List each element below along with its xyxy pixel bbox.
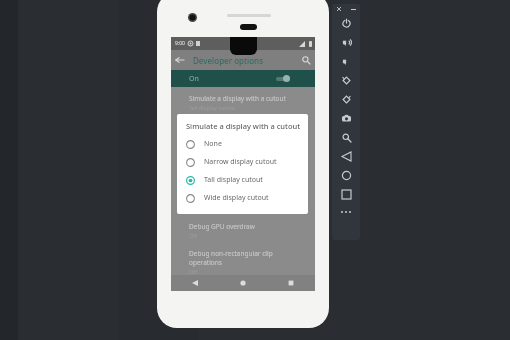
- button[interactable]: Power: [332, 14, 360, 33]
- button[interactable]: Screenshot: [332, 109, 360, 128]
- button[interactable]: Back: [171, 51, 189, 69]
- button[interactable]: Overview: [332, 185, 360, 204]
- staticText: Narrow display cutout: [204, 157, 277, 167]
- button[interactable]: Show non-rectangular clip oper...: [171, 203, 315, 214]
- button[interactable]: Volume down: [332, 52, 360, 71]
- button[interactable]: Home: [332, 166, 360, 185]
- button[interactable]: Minimize: [346, 4, 360, 14]
- staticText: Debug non-rectangular clip operations: [189, 249, 307, 267]
- button[interactable]: Back: [332, 147, 360, 166]
- staticText: Simulate a display with a cutout: [189, 94, 286, 103]
- button[interactable]: Home: [219, 275, 267, 291]
- button[interactable]: Simulate a display with a cutout: [171, 87, 315, 111]
- button[interactable]: Zoom: [332, 128, 360, 147]
- staticText: Developer options: [193, 55, 297, 66]
- button[interactable]: Search: [297, 51, 315, 69]
- button[interactable]: None: [186, 135, 302, 153]
- button[interactable]: Close: [332, 4, 346, 14]
- button[interactable]: On: [171, 70, 315, 87]
- staticText: None: [204, 139, 222, 149]
- staticText: Tall display cutout: [204, 175, 263, 185]
- button[interactable]: Debug GPU overdraw: [171, 214, 315, 239]
- button[interactable]: Volume up: [332, 33, 360, 52]
- button[interactable]: Tall display cutout: [186, 171, 302, 189]
- button[interactable]: Rotate right: [332, 90, 360, 109]
- button[interactable]: More options: [332, 204, 360, 220]
- staticText: Simulate a display with a cutout: [186, 121, 301, 131]
- button[interactable]: Narrow display cutout: [186, 153, 302, 171]
- button[interactable]: Rotate left: [332, 71, 360, 90]
- staticText: 9:00: [175, 40, 185, 47]
- button[interactable]: Debug non-rectangular clip operations: [171, 239, 315, 275]
- button[interactable]: Wide display cutout: [186, 189, 302, 207]
- button[interactable]: Back: [171, 275, 219, 291]
- staticText: Wide display cutout: [204, 193, 269, 203]
- button[interactable]: Overview: [267, 275, 315, 291]
- staticText: Off: [189, 268, 198, 275]
- staticText: On: [189, 74, 276, 84]
- staticText: Debug GPU overdraw: [189, 222, 255, 231]
- staticText: Tall display cutout: [189, 104, 236, 111]
- staticText: Off: [189, 232, 198, 239]
